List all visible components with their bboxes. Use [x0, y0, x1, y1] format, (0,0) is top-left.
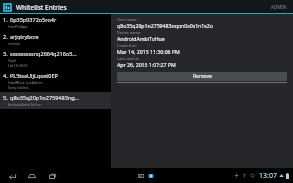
staticText: remote — [8, 41, 21, 46]
staticText: arjqtrybcre — [10, 33, 39, 40]
staticText: 5. — [3, 94, 8, 101]
other: App icon — [3, 3, 12, 12]
staticText: Device name: — [117, 30, 141, 35]
staticText: 13:07 — [259, 171, 277, 181]
button[interactable]: 4. — [0, 70, 111, 92]
staticText: 6p35p0372o5ro4r — [10, 16, 57, 23]
staticText: HueWhite LuxAdmin — [8, 80, 43, 85]
staticText: HueProApp — [8, 24, 28, 29]
button[interactable]: ADMIN — [269, 2, 289, 12]
button[interactable]: Home — [25, 169, 39, 183]
staticText: Whitelist Entries — [16, 3, 67, 12]
staticText: Last used at: — [117, 56, 140, 61]
staticText: Apr 26, 2015 1:07:27 PM — [117, 61, 176, 68]
staticText: ADMIN — [271, 4, 287, 10]
staticText: Mar 14, 2015 11:36:06 PM — [117, 48, 180, 55]
staticText: Lid LG 6065 — [8, 63, 28, 68]
staticText: Created at: — [117, 43, 137, 48]
staticText: Remove — [193, 73, 212, 80]
staticText: 3. — [3, 50, 8, 57]
button[interactable]: Remove — [117, 72, 287, 81]
staticText: q8o35q20p1n2759483ng... — [10, 94, 79, 101]
staticText: sssssssssnq2664q216o5... — [10, 50, 77, 57]
staticText: AndroidAmbiToHue — [117, 35, 165, 42]
staticText: 1. — [3, 16, 8, 23]
staticText: AndroidAmbiToHue — [8, 102, 42, 107]
staticText: 2. — [3, 33, 8, 40]
button[interactable]: 3. — [0, 48, 111, 70]
staticText: Sony tablets — [8, 85, 29, 90]
staticText: q8o35q20p1n2759483nqon0s0s1n1s2o — [117, 22, 213, 29]
button[interactable]: 1. — [0, 14, 111, 31]
staticText: PL5tsaUljLqoxt0EP — [10, 72, 58, 79]
staticText: 4. — [3, 72, 8, 79]
staticText: Hue) — [8, 58, 16, 63]
button[interactable]: Back — [5, 169, 19, 183]
button[interactable]: 2. — [0, 31, 111, 48]
button[interactable]: 5. — [0, 92, 111, 109]
button[interactable]: Recent apps — [45, 169, 59, 183]
staticText: User name: — [117, 17, 138, 22]
